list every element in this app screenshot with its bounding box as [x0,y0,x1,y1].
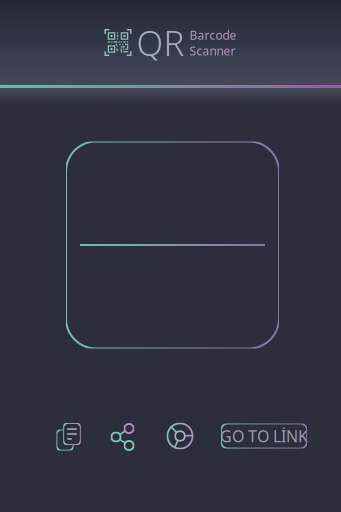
button[interactable]: GO TO LİNK [221,423,307,448]
button[interactable]: Share [101,416,143,456]
button[interactable]: Copy result [48,416,90,456]
staticText: GO TO LİNK [220,425,308,447]
button[interactable]: Open in browser [159,416,201,456]
